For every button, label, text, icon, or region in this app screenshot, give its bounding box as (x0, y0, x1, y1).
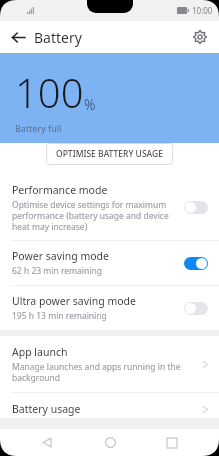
button[interactable]: Back (32, 429, 62, 456)
button[interactable]: Off (184, 302, 208, 315)
staticText: OPTIMISE BATTERY USAGE (56, 148, 163, 160)
staticText: % (84, 95, 96, 114)
staticText: Battery full (15, 122, 62, 134)
staticText: App launch (12, 345, 68, 359)
staticText: 195 h 13 min remaining (12, 310, 107, 322)
staticText: 100 (15, 65, 84, 119)
button[interactable]: App launch (0, 336, 219, 392)
staticText: Battery usage (12, 402, 81, 416)
button[interactable]: Power consumption details (0, 426, 219, 456)
staticText: 62 h 23 min remaining (12, 265, 102, 277)
button[interactable]: Ultra power saving mode (0, 286, 219, 330)
button[interactable]: Off (184, 201, 208, 214)
button[interactable]: Power saving mode (0, 241, 219, 285)
staticText: Manage launches and apps running in the … (12, 361, 194, 383)
staticText: Power consumption details (12, 435, 146, 447)
button[interactable]: Performance mode (0, 175, 219, 240)
button[interactable]: Home (95, 429, 125, 456)
staticText: Performance mode (12, 183, 108, 197)
button[interactable]: Settings (187, 24, 213, 50)
button[interactable]: On (184, 257, 208, 270)
staticText: Optimise device settings for maximum per… (12, 199, 176, 232)
staticText: Ultra power saving mode (12, 294, 136, 308)
button[interactable]: Back (5, 24, 31, 50)
staticText: 10:00 (192, 5, 213, 16)
staticText: Power saving mode (12, 249, 109, 263)
button[interactable]: OPTIMISE BATTERY USAGE (46, 143, 173, 165)
staticText: Battery (34, 28, 82, 47)
button[interactable]: Battery usage (0, 393, 219, 425)
button[interactable]: Recents (157, 429, 187, 456)
